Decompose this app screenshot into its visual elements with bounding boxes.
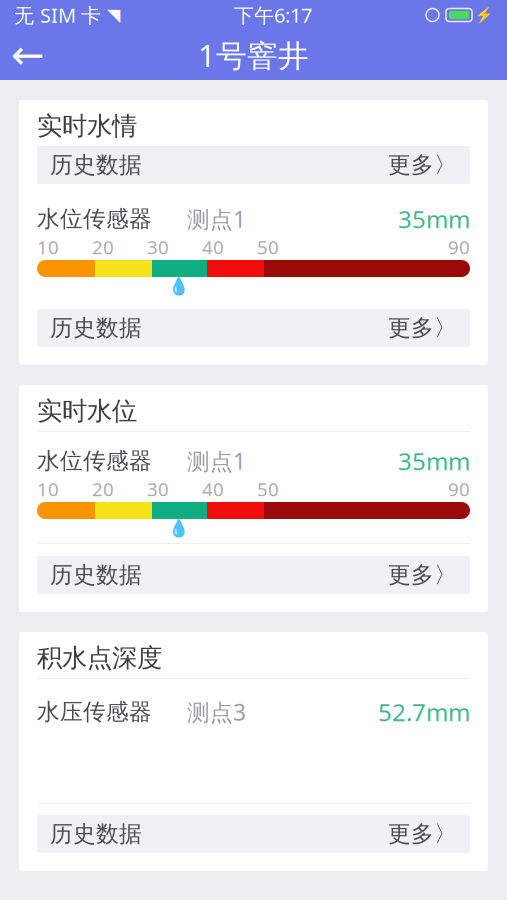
staticText: 历史数据 [50,151,142,179]
staticText: 测点1 [187,446,246,476]
staticText: 30 [147,477,169,501]
staticText: 52.7mm [378,696,470,728]
staticText: ← [11,32,45,78]
staticText: 20 [92,477,114,501]
staticText: 积水点深度 [37,642,162,673]
staticText: 更多〉 [388,314,457,342]
staticText: 💧 [168,518,190,538]
staticText: 90 [448,235,470,259]
staticText: 实时水情 [37,110,137,141]
staticText: 10 [37,235,59,259]
staticText: 90 [448,477,470,501]
staticText: 历史数据 [50,820,142,848]
staticText: 实时水位 [37,395,137,426]
staticText: 💧 [168,276,190,296]
staticText: 水位传感器 [37,205,152,233]
staticText: 10 [37,477,59,501]
staticText: 更多〉 [388,561,457,589]
button[interactable]: Back [0,31,56,79]
button[interactable]: 历史数据 [37,146,470,184]
staticText: 1号窨井 [198,35,309,75]
staticText: ◥ [107,5,120,25]
staticText: 更多〉 [388,151,457,179]
button[interactable]: 历史数据 [37,815,470,853]
staticText: 20 [92,235,114,259]
staticText: 下午6:17 [234,2,312,28]
staticText: 历史数据 [50,314,142,342]
staticText: 40 [202,477,224,501]
button[interactable]: 历史数据 [37,309,470,347]
staticText: 测点3 [187,697,246,727]
staticText: 50 [257,235,279,259]
staticText: 35mm [398,445,470,477]
staticText: 水位传感器 [37,447,152,475]
staticText: ⚡ [475,7,493,23]
staticText: 无 SIM 卡 [14,2,101,28]
staticText: 历史数据 [50,561,142,589]
staticText: 50 [257,477,279,501]
staticText: 更多〉 [388,820,457,848]
button[interactable]: 历史数据 [37,556,470,594]
staticText: 40 [202,235,224,259]
staticText: 测点1 [187,204,246,234]
staticText: 水压传感器 [37,698,152,726]
staticText: 35mm [398,203,470,235]
staticText: 30 [147,235,169,259]
